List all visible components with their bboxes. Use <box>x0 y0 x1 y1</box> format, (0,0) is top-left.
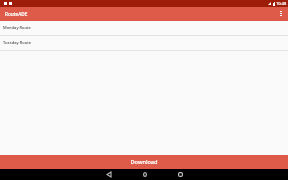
button[interactable]: More options <box>276 7 286 21</box>
staticText: Monday Route <box>3 25 31 30</box>
staticText: RouteADE <box>5 11 28 17</box>
button[interactable]: Recents <box>175 169 186 180</box>
staticText: Download <box>130 158 158 166</box>
button[interactable]: Tuesday Route <box>0 36 288 51</box>
button[interactable]: Monday Route <box>0 21 288 36</box>
button[interactable]: Back <box>103 169 114 180</box>
button[interactable]: Home <box>139 169 150 180</box>
button[interactable]: Download <box>0 155 288 169</box>
staticText: 10:48 <box>276 1 287 6</box>
staticText: Tuesday Route <box>3 40 32 45</box>
